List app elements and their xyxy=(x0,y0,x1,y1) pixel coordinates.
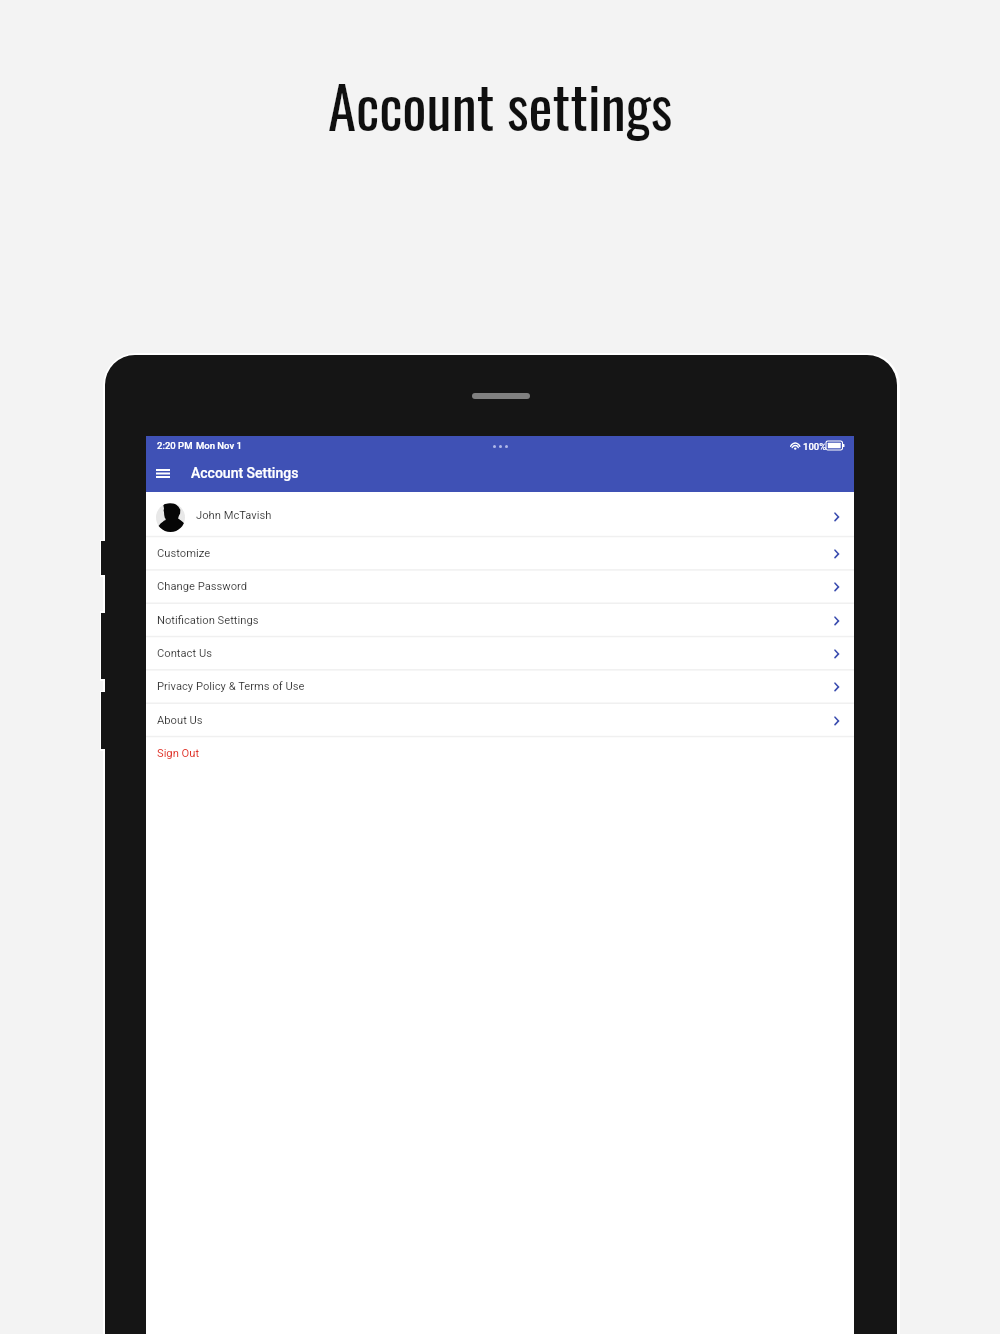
button[interactable]: Notification Settings xyxy=(146,603,854,636)
button[interactable]: Customize xyxy=(146,536,854,569)
staticText: 2:20 PM xyxy=(157,440,193,451)
staticText: Sign Out xyxy=(157,747,200,760)
staticText: 100% xyxy=(803,441,827,452)
staticText: Change Password xyxy=(157,580,248,593)
staticText: Privacy Policy & Terms of Use xyxy=(157,680,305,693)
staticText: Customize xyxy=(157,547,211,560)
other: Open xyxy=(834,716,840,726)
other: Open xyxy=(834,616,840,626)
button[interactable]: Contact Us xyxy=(146,636,854,669)
staticText: Account settings xyxy=(328,63,673,147)
button[interactable]: Open navigation menu xyxy=(150,460,176,486)
staticText: About Us xyxy=(157,714,203,727)
staticText: Contact Us xyxy=(157,647,212,660)
staticText: Notification Settings xyxy=(157,614,259,627)
button[interactable]: John McTavish xyxy=(146,492,854,536)
staticText: Mon Nov 1 xyxy=(196,440,242,451)
other: Open xyxy=(834,582,840,592)
button[interactable]: Sign Out xyxy=(146,736,854,769)
button[interactable]: Change Password xyxy=(146,569,854,602)
other: Open xyxy=(834,649,840,659)
button[interactable]: About Us xyxy=(146,703,854,736)
button[interactable]: Privacy Policy & Terms of Use xyxy=(146,669,854,702)
other: Open xyxy=(834,549,840,559)
staticText: Account Settings xyxy=(191,465,299,481)
other: Open xyxy=(834,512,840,522)
other: Open xyxy=(834,682,840,692)
staticText: John McTavish xyxy=(196,509,272,522)
